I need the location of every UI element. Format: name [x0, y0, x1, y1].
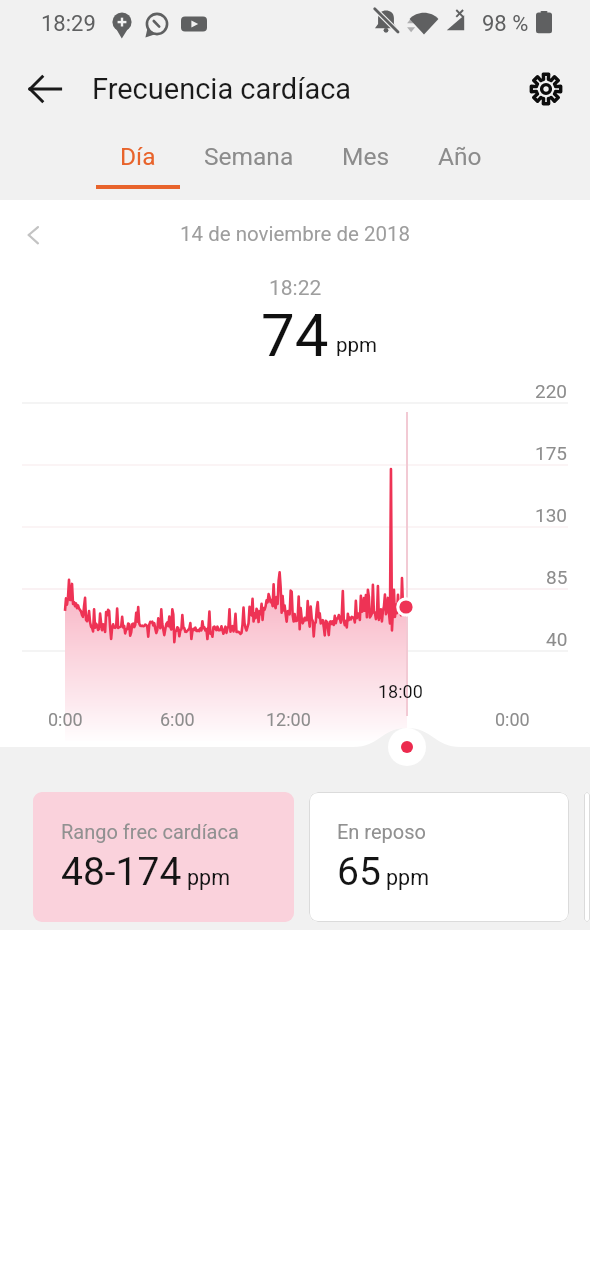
- staticText: 18:00: [378, 681, 423, 702]
- button[interactable]: Settings: [520, 63, 572, 115]
- button[interactable]: Mes: [318, 128, 414, 200]
- staticText: 0:00: [48, 709, 83, 730]
- staticText: 130: [535, 504, 568, 526]
- staticText: 12:00: [266, 709, 311, 730]
- staticText: 85: [546, 566, 568, 588]
- staticText: 18:22: [269, 276, 322, 301]
- staticText: Mes: [342, 142, 390, 171]
- staticText: Rango frec cardíaca: [61, 820, 239, 843]
- staticText: 175: [535, 442, 568, 464]
- button[interactable]: Measure heart rate: [388, 728, 426, 766]
- staticText: ppm: [336, 333, 377, 357]
- staticText: 98 %: [482, 11, 529, 37]
- staticText: 220: [535, 380, 568, 402]
- staticText: ppm: [386, 865, 429, 890]
- staticText: Año: [438, 142, 482, 171]
- button[interactable]: [584, 792, 590, 922]
- button[interactable]: Semana: [180, 128, 318, 200]
- button[interactable]: Previous day: [12, 213, 56, 257]
- staticText: 65: [337, 849, 381, 895]
- staticText: 0:00: [495, 709, 530, 730]
- button[interactable]: Año: [414, 128, 506, 200]
- button[interactable]: Día: [96, 128, 180, 200]
- staticText: ppm: [187, 865, 230, 890]
- staticText: Día: [120, 142, 156, 171]
- staticText: 6:00: [160, 709, 195, 730]
- staticText: 48-174: [61, 849, 182, 895]
- staticText: 74: [261, 300, 329, 370]
- button[interactable]: Back: [20, 64, 70, 114]
- staticText: En reposo: [337, 820, 426, 843]
- button[interactable]: Rango frec cardíaca: [33, 792, 294, 922]
- staticText: Semana: [204, 142, 294, 171]
- staticText: 14 de noviembre de 2018: [180, 222, 411, 246]
- button[interactable]: En reposo: [309, 792, 569, 922]
- staticText: Frecuencia cardíaca: [92, 72, 352, 106]
- staticText: 40: [546, 628, 568, 650]
- staticText: 18:29: [41, 11, 96, 37]
